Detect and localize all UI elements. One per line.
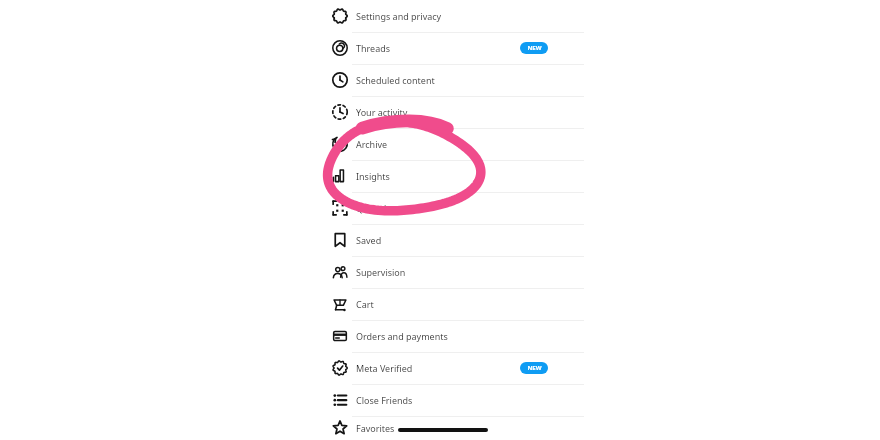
staticText: NEW bbox=[527, 364, 542, 372]
button[interactable]: Archive bbox=[324, 128, 556, 160]
button[interactable]: Insights bbox=[324, 160, 556, 192]
staticText: NEW bbox=[527, 44, 542, 52]
staticText: Insights bbox=[356, 170, 390, 182]
staticText: Favorites bbox=[356, 422, 395, 434]
staticText: Meta Verified bbox=[356, 362, 413, 374]
staticText: Threads bbox=[356, 42, 391, 54]
staticText: Orders and payments bbox=[356, 330, 448, 342]
button[interactable]: Saved bbox=[324, 224, 556, 256]
staticText: Your activity bbox=[356, 106, 408, 118]
staticText: Settings and privacy bbox=[356, 10, 442, 22]
button[interactable]: Threads bbox=[324, 32, 556, 64]
staticText: Archive bbox=[356, 138, 388, 150]
button[interactable]: Orders and payments bbox=[324, 320, 556, 352]
staticText: Supervision bbox=[356, 266, 406, 278]
staticText: Cart bbox=[356, 298, 374, 310]
button[interactable]: Your activity bbox=[324, 96, 556, 128]
button[interactable]: Favorites bbox=[324, 416, 556, 440]
staticText: Saved bbox=[356, 234, 382, 246]
button[interactable]: Scheduled content bbox=[324, 64, 556, 96]
button[interactable]: New bbox=[520, 42, 548, 54]
button[interactable]: QR code bbox=[324, 192, 556, 224]
staticText: Scheduled content bbox=[356, 74, 435, 86]
button[interactable]: New bbox=[520, 362, 548, 374]
button[interactable]: Close Friends bbox=[324, 384, 556, 416]
button[interactable]: Settings and privacy bbox=[324, 0, 556, 32]
button[interactable]: Supervision bbox=[324, 256, 556, 288]
staticText: QR code bbox=[356, 202, 392, 214]
button[interactable]: Cart bbox=[324, 288, 556, 320]
button[interactable]: Meta Verified bbox=[324, 352, 556, 384]
staticText: Close Friends bbox=[356, 394, 413, 406]
